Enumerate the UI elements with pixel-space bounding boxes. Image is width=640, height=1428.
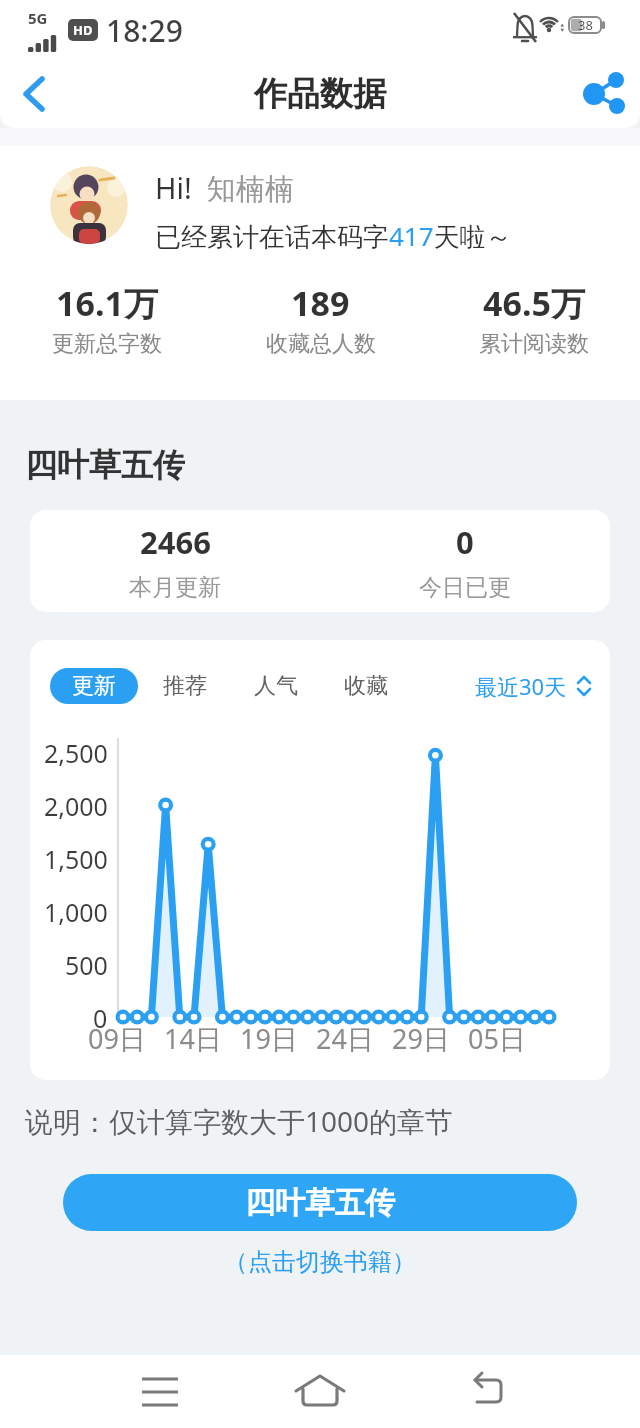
staticText: 四叶草五传 bbox=[25, 445, 185, 485]
staticText: 四叶草五传 bbox=[245, 1184, 395, 1222]
staticText: 38 bbox=[578, 16, 593, 34]
staticText: 本月更新 bbox=[129, 573, 221, 602]
button[interactable]: 推荐 bbox=[163, 672, 207, 700]
button[interactable]: 更新 bbox=[50, 668, 138, 704]
staticText: 0 bbox=[93, 1001, 108, 1035]
staticText: 更新总字数 bbox=[52, 330, 162, 358]
staticText: 收藏总人数 bbox=[266, 330, 376, 358]
staticText: 说明：仅计算字数大于1000的章节 bbox=[25, 1102, 454, 1140]
staticText: HD bbox=[73, 21, 93, 39]
staticText: 14日 bbox=[164, 1020, 222, 1057]
button[interactable] bbox=[133, 1365, 187, 1419]
button[interactable]: 最近30天 bbox=[475, 671, 592, 701]
staticText: 16.1万 bbox=[56, 280, 158, 326]
staticText: 0 bbox=[456, 521, 474, 563]
staticText: 最近30天 bbox=[475, 671, 567, 701]
button[interactable]: （点击切换书籍） bbox=[224, 1247, 416, 1277]
staticText: 人气 bbox=[254, 672, 298, 700]
staticText: 更新 bbox=[72, 672, 116, 700]
staticText: 05日 bbox=[468, 1020, 526, 1057]
button[interactable] bbox=[461, 1365, 515, 1419]
staticText: 09日 bbox=[88, 1020, 146, 1057]
staticText: 累计阅读数 bbox=[479, 330, 589, 358]
staticText: 1,000 bbox=[44, 895, 108, 929]
staticText: 作品数据 bbox=[254, 73, 386, 115]
staticText: 5G bbox=[28, 8, 48, 28]
staticText: 46.5万 bbox=[483, 280, 585, 326]
staticText: 29日 bbox=[392, 1020, 450, 1057]
button[interactable]: 收藏 bbox=[344, 672, 388, 700]
staticText: Hi! 知楠楠 bbox=[155, 168, 294, 208]
button[interactable] bbox=[576, 64, 640, 124]
button[interactable] bbox=[293, 1365, 347, 1419]
staticText: 今日已更 bbox=[419, 573, 511, 602]
staticText: 24日 bbox=[316, 1020, 374, 1057]
staticText: （点击切换书籍） bbox=[224, 1247, 416, 1277]
staticText: 500 bbox=[65, 948, 108, 982]
button[interactable] bbox=[0, 64, 60, 124]
staticText: 19日 bbox=[240, 1020, 298, 1057]
staticText: 1,500 bbox=[44, 842, 108, 876]
staticText: 推荐 bbox=[163, 672, 207, 700]
staticText: 已经累计在话本码字417天啦～ bbox=[155, 218, 512, 254]
staticText: 2,500 bbox=[44, 736, 108, 770]
staticText: 收藏 bbox=[344, 672, 388, 700]
staticText: 2466 bbox=[140, 521, 211, 563]
staticText: 189 bbox=[291, 280, 350, 326]
button[interactable]: 人气 bbox=[254, 672, 298, 700]
staticText: 2,000 bbox=[44, 789, 108, 823]
staticText: 18:29 bbox=[106, 10, 183, 51]
button[interactable]: 四叶草五传 bbox=[63, 1174, 577, 1231]
